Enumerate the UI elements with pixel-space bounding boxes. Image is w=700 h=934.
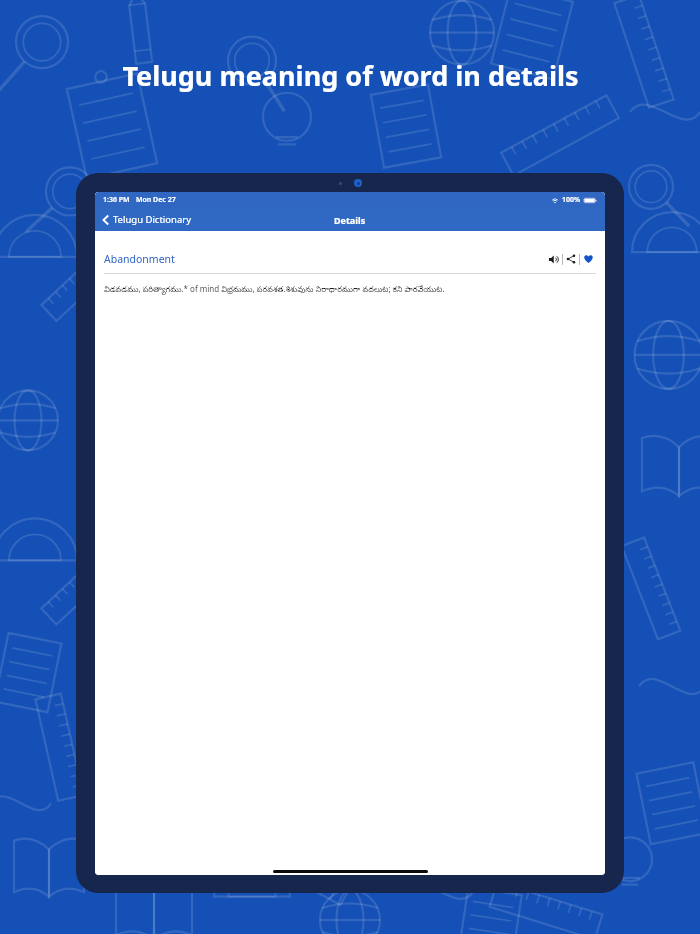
staticText: Mon Dec 27	[136, 195, 176, 205]
staticText: విడవడము, పరిత్యాగము.* of mind విభ్రమము, …	[104, 283, 445, 295]
staticText: Telugu Dictionary	[113, 213, 192, 226]
staticText: 1:36 PM	[103, 195, 130, 205]
staticText: Telugu meaning of word in details	[122, 57, 579, 94]
staticText: Abandonment	[104, 252, 175, 266]
button[interactable]: Share	[563, 252, 579, 266]
button[interactable]: Telugu Dictionary	[102, 208, 605, 231]
staticText: 100%	[562, 195, 581, 205]
button[interactable]: Favourite	[580, 252, 596, 266]
button[interactable]: Pronounce	[546, 252, 562, 266]
staticText: Details	[334, 214, 366, 226]
